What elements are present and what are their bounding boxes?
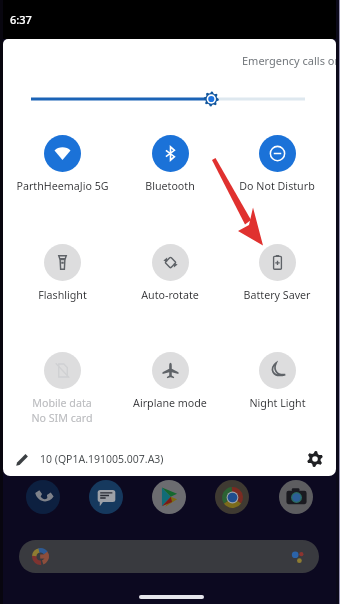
button[interactable]: Airplane mode (118, 352, 222, 411)
button[interactable]: Play Store (152, 480, 186, 514)
staticText: Airplane mode (133, 396, 207, 411)
button[interactable]: Night Light (225, 352, 329, 411)
staticText: Bluetooth (145, 179, 195, 194)
staticText: ParthHeemaJio 5G (16, 179, 109, 194)
staticText: Do Not Disturb (239, 179, 315, 194)
staticText: Battery Saver (243, 288, 311, 303)
button[interactable]: Do Not Disturb (225, 135, 329, 194)
button[interactable]: Auto-rotate (118, 244, 222, 303)
button[interactable]: Settings (305, 449, 325, 469)
button[interactable]: Mobile data (10, 352, 114, 426)
button[interactable]: Edit tiles (14, 451, 31, 468)
staticText: Night Light (249, 396, 306, 411)
button[interactable]: Search (19, 540, 319, 573)
button[interactable]: Messages (89, 480, 123, 514)
staticText: Flashlight (38, 288, 87, 303)
button[interactable]: Phone (26, 480, 60, 514)
button[interactable]: ParthHeemaJio 5G (10, 135, 114, 194)
button[interactable]: Battery Saver (225, 244, 329, 303)
staticText: 6:37 (10, 12, 32, 27)
button[interactable]: Chrome (215, 480, 249, 514)
button[interactable]: Camera (279, 480, 313, 514)
button[interactable]: Flashlight (10, 244, 114, 303)
staticText: Auto-rotate (141, 288, 199, 303)
staticText: Mobile data (32, 396, 92, 411)
staticText: 10 (QP1A.191005.007.A3) (40, 452, 164, 466)
staticText: No SIM card (31, 411, 93, 426)
staticText: Emergency calls only (242, 53, 336, 68)
button[interactable]: Bluetooth (118, 135, 222, 194)
